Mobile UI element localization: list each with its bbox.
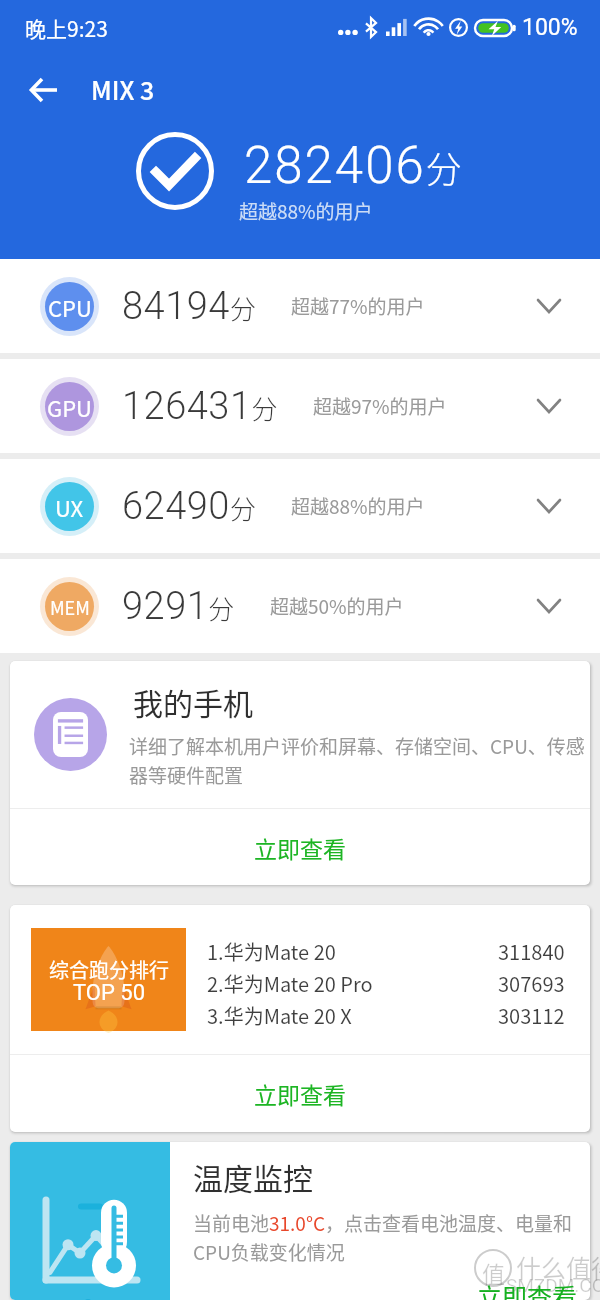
staticText: 307693 xyxy=(498,969,565,998)
staticText: 126431分 xyxy=(122,384,278,429)
staticText: 2.华为Mate 20 Pro xyxy=(207,969,373,998)
staticText: 立即查看 xyxy=(477,1278,578,1300)
staticText: MIX 3 xyxy=(91,71,155,107)
button[interactable]: MEM xyxy=(0,559,600,653)
staticText: 311840 xyxy=(498,937,565,966)
staticText: 超越77%的用户 xyxy=(291,292,425,320)
staticText: 超越97%的用户 xyxy=(313,392,447,420)
staticText: TOP 50 xyxy=(73,980,146,1006)
staticText: 立即查看 xyxy=(254,1077,346,1110)
staticText: 什么值得买 xyxy=(516,1249,600,1285)
button[interactable]: GPU xyxy=(0,359,600,453)
staticText: 84194分 xyxy=(122,284,256,329)
button[interactable]: 立即查看 xyxy=(10,809,590,885)
staticText: 当前电池31.0°C，点击查看电池温度、电量和CPU负载变化情况 xyxy=(193,1209,575,1266)
staticText: 详细了解本机用户评价和屏幕、存储空间、CPU、传感器等硬件配置 xyxy=(129,732,588,789)
staticText: 282406分 xyxy=(244,136,462,196)
staticText: 超越50%的用户 xyxy=(270,592,404,620)
button[interactable]: CPU xyxy=(0,259,600,353)
staticText: SMZDM.COM xyxy=(506,1274,600,1296)
staticText: 立即查看 xyxy=(254,831,346,864)
staticText: 1.华为Mate 20 xyxy=(207,937,336,966)
staticText: 我的手机 xyxy=(133,680,253,723)
button[interactable]: UX xyxy=(0,459,600,553)
staticText: 3.华为Mate 20 X xyxy=(207,1001,352,1030)
staticText: 综合跑分排行 xyxy=(49,955,169,984)
staticText: 9291分 xyxy=(122,584,235,629)
staticText: 晚上9:23 xyxy=(25,13,108,43)
staticText: 62490分 xyxy=(122,484,256,529)
staticText: UX xyxy=(55,491,84,523)
button[interactable]: 立即查看 xyxy=(10,1055,590,1132)
button[interactable]: Back xyxy=(29,75,59,105)
staticText: GPU xyxy=(47,391,92,423)
staticText: MEM xyxy=(50,594,90,620)
staticText: 超越88%的用户 xyxy=(239,197,373,225)
staticText: CPU xyxy=(48,291,92,323)
staticText: 值 xyxy=(482,1256,505,1289)
staticText: 303112 xyxy=(498,1001,565,1030)
staticText: 超越88%的用户 xyxy=(291,492,425,520)
staticText: 100% xyxy=(522,14,578,41)
staticText: 温度监控 xyxy=(193,1155,313,1198)
